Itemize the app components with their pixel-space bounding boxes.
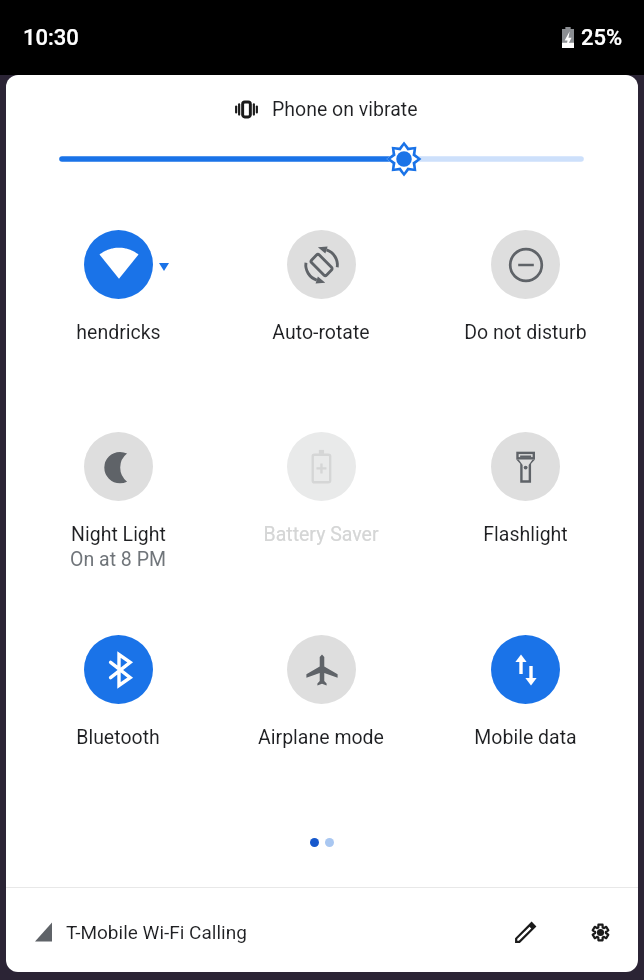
button[interactable]: Auto-rotate (226, 225, 416, 350)
button[interactable]: Flashlight (430, 427, 620, 552)
button[interactable]: Airplane mode (226, 630, 416, 755)
staticText: 10:30 (23, 25, 79, 51)
button[interactable]: Bluetooth (23, 630, 213, 755)
staticText: hendricks (76, 321, 161, 344)
button[interactable]: Do not disturb (430, 225, 620, 350)
staticText: Do not disturb (464, 321, 587, 344)
staticText: Night Light (71, 523, 166, 546)
staticText: 25% (581, 25, 623, 51)
button[interactable]: T-Mobile Wi-Fi Calling (35, 913, 247, 951)
button[interactable]: Battery Saver (226, 427, 416, 552)
staticText: Auto-rotate (272, 321, 370, 344)
staticText: T-Mobile Wi-Fi Calling (66, 921, 247, 943)
staticText: Phone on vibrate (272, 98, 418, 121)
staticText: Mobile data (474, 726, 577, 749)
button[interactable]: Mobile data (430, 630, 620, 755)
staticText: Battery Saver (263, 523, 379, 546)
staticText: Flashlight (483, 523, 568, 546)
button[interactable]: Phone on vibrate (235, 95, 418, 123)
button[interactable] (44, 139, 599, 179)
button[interactable]: Night Light (23, 427, 213, 552)
button[interactable]: hendricks (23, 225, 213, 350)
staticText: Bluetooth (76, 726, 160, 749)
staticText: Airplane mode (258, 726, 384, 749)
button[interactable]: Edit tiles (503, 910, 547, 954)
button[interactable]: Settings (578, 910, 622, 954)
staticText: On at 8 PM (70, 548, 166, 571)
